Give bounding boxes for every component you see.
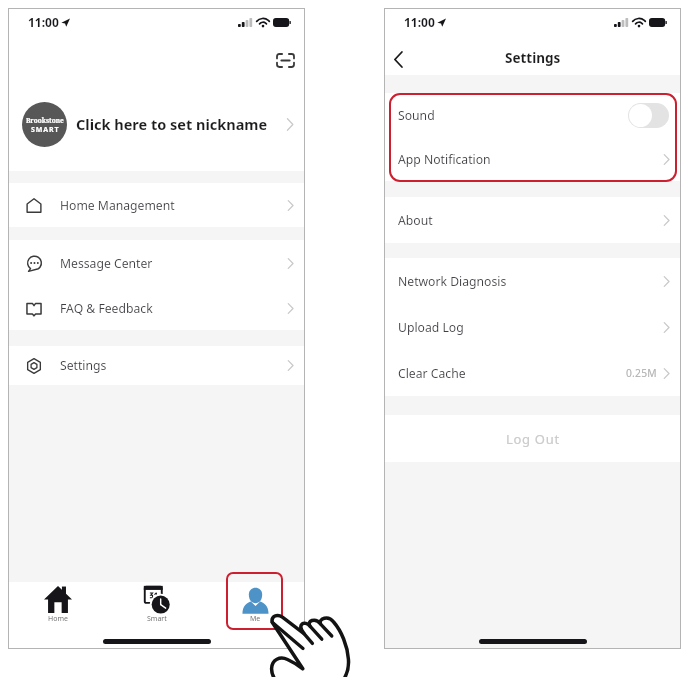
staticText: 11:00 bbox=[404, 14, 435, 30]
staticText: FAQ & Feedback bbox=[60, 300, 153, 317]
staticText: Home bbox=[48, 614, 68, 624]
button[interactable]: Me bbox=[206, 582, 305, 632]
button[interactable]: Clear Cache bbox=[384, 350, 681, 396]
button[interactable]: Scan QR code bbox=[272, 47, 298, 73]
button[interactable]: Upload Log bbox=[384, 304, 681, 350]
button[interactable]: About bbox=[384, 197, 681, 243]
button[interactable]: Smart bbox=[107, 582, 206, 632]
button[interactable]: Home bbox=[8, 582, 107, 632]
button[interactable]: Log Out bbox=[384, 415, 681, 462]
staticText: Upload Log bbox=[398, 319, 464, 336]
staticText: Me bbox=[250, 614, 261, 624]
button[interactable]: Back bbox=[385, 46, 411, 72]
button[interactable]: FAQ & Feedback bbox=[8, 287, 305, 330]
staticText: Message Center bbox=[60, 255, 153, 272]
button[interactable]: Settings bbox=[8, 346, 305, 385]
staticText: Smart bbox=[147, 614, 167, 624]
button[interactable]: Message Center bbox=[8, 240, 305, 287]
staticText: SMART bbox=[31, 125, 60, 135]
button[interactable]: Home Management bbox=[8, 183, 305, 227]
staticText: 0.25M bbox=[626, 366, 657, 380]
staticText: Log Out bbox=[506, 430, 560, 448]
staticText: Settings bbox=[60, 357, 107, 374]
staticText: App Notification bbox=[398, 151, 491, 168]
staticText: Sound bbox=[398, 107, 435, 124]
button[interactable]: Network Diagnosis bbox=[384, 258, 681, 304]
staticText: About bbox=[398, 212, 433, 229]
button[interactable]: Sound bbox=[384, 93, 681, 137]
staticText: Settings bbox=[505, 49, 561, 67]
staticText: 11:00 bbox=[28, 14, 59, 30]
staticText: Click here to set nickname bbox=[76, 114, 268, 134]
button[interactable]: Sound on/off bbox=[628, 103, 669, 128]
button[interactable]: App Notification bbox=[384, 137, 681, 181]
staticText: Home Management bbox=[60, 197, 175, 214]
button[interactable]: Brookstone bbox=[8, 93, 305, 155]
staticText: Clear Cache bbox=[398, 365, 466, 382]
staticText: Brookstone bbox=[26, 116, 64, 125]
staticText: Network Diagnosis bbox=[398, 273, 507, 290]
